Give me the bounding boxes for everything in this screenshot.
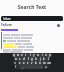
button[interactable]: q [12, 53, 16, 57]
button[interactable]: z [18, 61, 22, 65]
staticText: p [49, 53, 51, 57]
button[interactable]: n [38, 61, 42, 65]
staticText: c [27, 61, 29, 65]
staticText: a [15, 57, 17, 61]
staticText: k [43, 57, 45, 61]
button[interactable]: s [18, 57, 22, 61]
button[interactable]: g [30, 57, 34, 61]
button[interactable]: o [44, 53, 48, 57]
staticText: h [35, 57, 37, 61]
staticText: t [30, 53, 31, 57]
button[interactable]: h [34, 57, 38, 61]
button[interactable]: t [28, 53, 32, 57]
button[interactable]: ⌫ [46, 61, 51, 65]
button[interactable]: failure [1, 16, 63, 21]
staticText: q [13, 53, 15, 57]
button[interactable]: j [38, 57, 42, 61]
button[interactable]: , [20, 65, 24, 69]
button[interactable]: ↵ [43, 65, 49, 69]
staticText: o [45, 53, 47, 57]
button[interactable]: r [24, 53, 28, 57]
button[interactable]: ?123 [15, 65, 20, 69]
button[interactable]: Search [57, 24, 60, 27]
staticText: b [35, 61, 37, 65]
staticText: v [31, 61, 33, 65]
staticText: j [40, 57, 41, 61]
button[interactable]: i [40, 53, 44, 57]
staticText: . [41, 65, 42, 69]
staticText: ⌫ [47, 62, 51, 65]
staticText: y [33, 53, 35, 57]
button[interactable]: y [32, 53, 36, 57]
staticText: n [39, 61, 41, 65]
staticText: e [21, 53, 23, 57]
staticText: u [37, 53, 39, 57]
staticText: l [48, 57, 49, 61]
staticText: d [23, 57, 25, 61]
staticText: , [22, 65, 23, 69]
staticText: r [25, 53, 27, 57]
button[interactable]: . [39, 65, 43, 69]
button[interactable]: u [36, 53, 40, 57]
staticText: ?123 [15, 65, 20, 69]
staticText: failure [3, 17, 11, 21]
button[interactable]: p [48, 53, 52, 57]
button[interactable]: w [16, 53, 20, 57]
staticText: Search Text [0, 4, 64, 11]
button[interactable]: m [42, 61, 46, 65]
staticText: s [19, 57, 21, 61]
button[interactable]: a [14, 57, 18, 61]
button[interactable]: f [26, 57, 30, 61]
button[interactable]: b [34, 61, 38, 65]
staticText: x [23, 61, 25, 65]
staticText: ↵ [45, 66, 48, 69]
button[interactable]: c [26, 61, 30, 65]
button[interactable]: l [46, 57, 50, 61]
staticText: g [31, 57, 33, 61]
staticText: z [19, 61, 21, 65]
button[interactable]: k [42, 57, 46, 61]
button[interactable]: x [22, 61, 26, 65]
staticText: Failure [1, 23, 12, 27]
staticText: m [43, 61, 46, 65]
button[interactable]: v [30, 61, 34, 65]
button[interactable]: ⇧ [13, 61, 18, 65]
button[interactable]: e [20, 53, 24, 57]
staticText: f [28, 57, 29, 61]
staticText: i [42, 53, 43, 57]
staticText: ⇧ [14, 62, 17, 65]
button[interactable]: d [22, 57, 26, 61]
staticText: w [17, 53, 20, 57]
